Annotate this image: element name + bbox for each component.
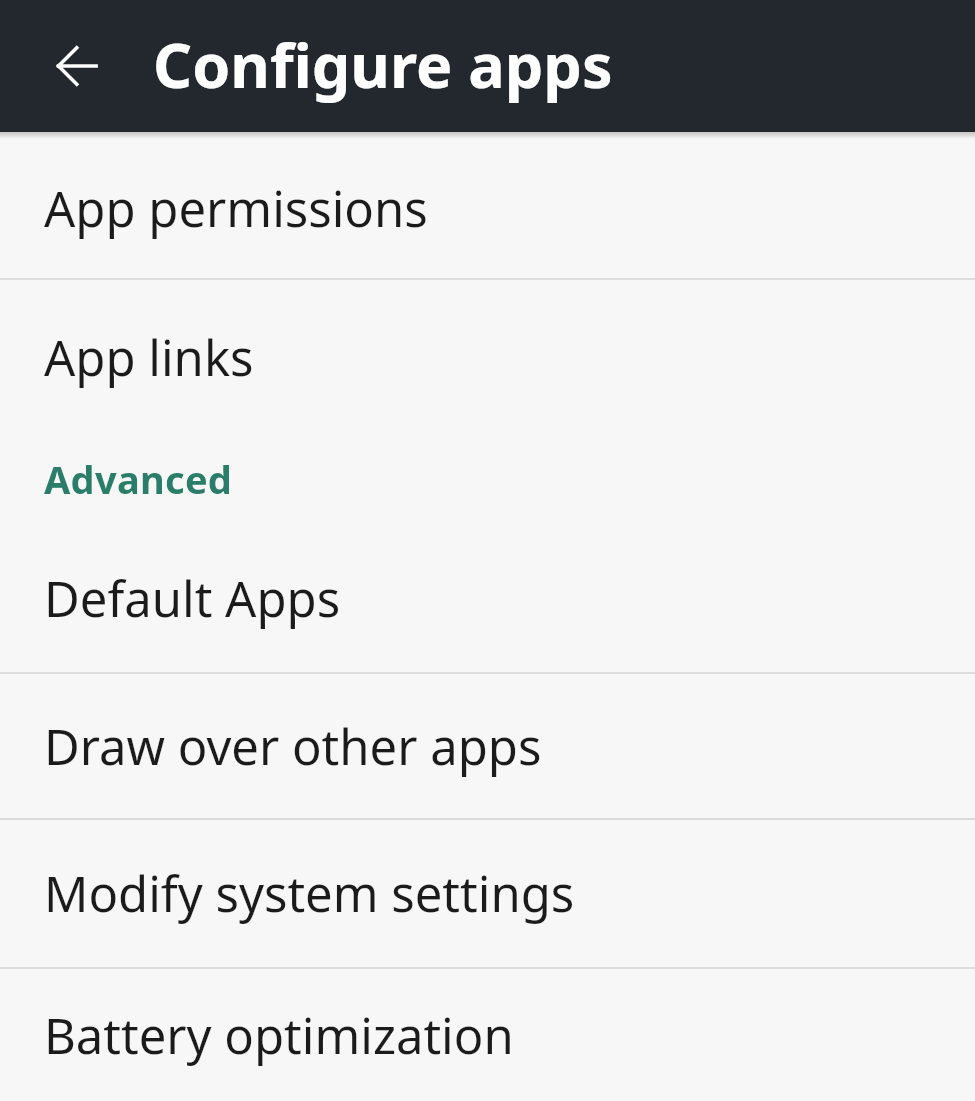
staticText: Modify system settings bbox=[44, 860, 575, 927]
staticText: Draw over other apps bbox=[44, 713, 542, 780]
staticText: Default Apps bbox=[44, 565, 341, 632]
button[interactable]: Draw over other apps bbox=[0, 674, 975, 818]
button[interactable]: App links bbox=[0, 280, 975, 434]
button[interactable]: App permissions bbox=[0, 139, 975, 278]
button[interactable]: Navigate up bbox=[32, 21, 122, 111]
staticText: App permissions bbox=[44, 175, 428, 242]
button[interactable]: Default Apps bbox=[0, 524, 975, 672]
button[interactable]: Battery optimization bbox=[0, 969, 975, 1101]
staticText: Battery optimization bbox=[44, 1002, 514, 1069]
staticText: Configure apps bbox=[153, 23, 613, 106]
button[interactable]: Modify system settings bbox=[0, 820, 975, 967]
staticText: App links bbox=[44, 324, 254, 391]
staticText: Advanced bbox=[44, 453, 233, 505]
